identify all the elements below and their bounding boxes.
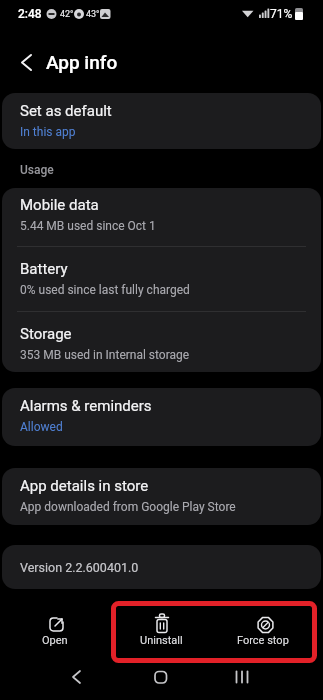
- staticText: Usage: [20, 163, 54, 177]
- button[interactable]: Mobile data: [20, 196, 156, 246]
- staticText: 71%: [270, 7, 293, 21]
- button[interactable]: [235, 607, 295, 659]
- staticText: Open: [42, 634, 68, 647]
- staticText: 0% used since last fully charged: [20, 283, 190, 297]
- staticText: Uninstall: [140, 634, 183, 647]
- button[interactable]: [132, 607, 192, 659]
- staticText: App downloaded from Google Play Store: [20, 500, 236, 514]
- button[interactable]: App details in store: [2, 468, 321, 525]
- button[interactable]: [222, 662, 262, 692]
- staticText: Battery: [20, 260, 68, 278]
- button[interactable]: Battery: [20, 260, 190, 311]
- staticText: App info: [46, 51, 118, 73]
- button[interactable]: [56, 662, 96, 692]
- staticText: In this app: [20, 125, 76, 139]
- staticText: Storage: [20, 325, 72, 343]
- staticText: 2:48: [18, 7, 42, 21]
- staticText: App details in store: [20, 477, 149, 495]
- button[interactable]: Alarms & reminders: [2, 388, 321, 446]
- staticText: Mobile data: [20, 196, 99, 214]
- staticText: Force stop: [237, 634, 289, 647]
- button[interactable]: Set as default: [2, 93, 321, 149]
- button[interactable]: Storage: [20, 325, 190, 362]
- button[interactable]: [10, 48, 42, 78]
- staticText: 43°: [86, 9, 100, 20]
- staticText: 5.44 MB used since Oct 1: [20, 219, 156, 233]
- button[interactable]: [141, 662, 181, 692]
- staticText: Allowed: [20, 420, 63, 434]
- staticText: Version 2.2.600401.0: [20, 560, 139, 575]
- staticText: Alarms & reminders: [20, 397, 152, 415]
- staticText: Set as default: [20, 102, 112, 120]
- staticText: 353 MB used in Internal storage: [20, 348, 190, 362]
- button[interactable]: Mobile data: [2, 188, 321, 372]
- staticText: 42°: [60, 9, 74, 20]
- button[interactable]: Version 2.2.600401.0: [2, 545, 321, 589]
- button[interactable]: [26, 607, 86, 659]
